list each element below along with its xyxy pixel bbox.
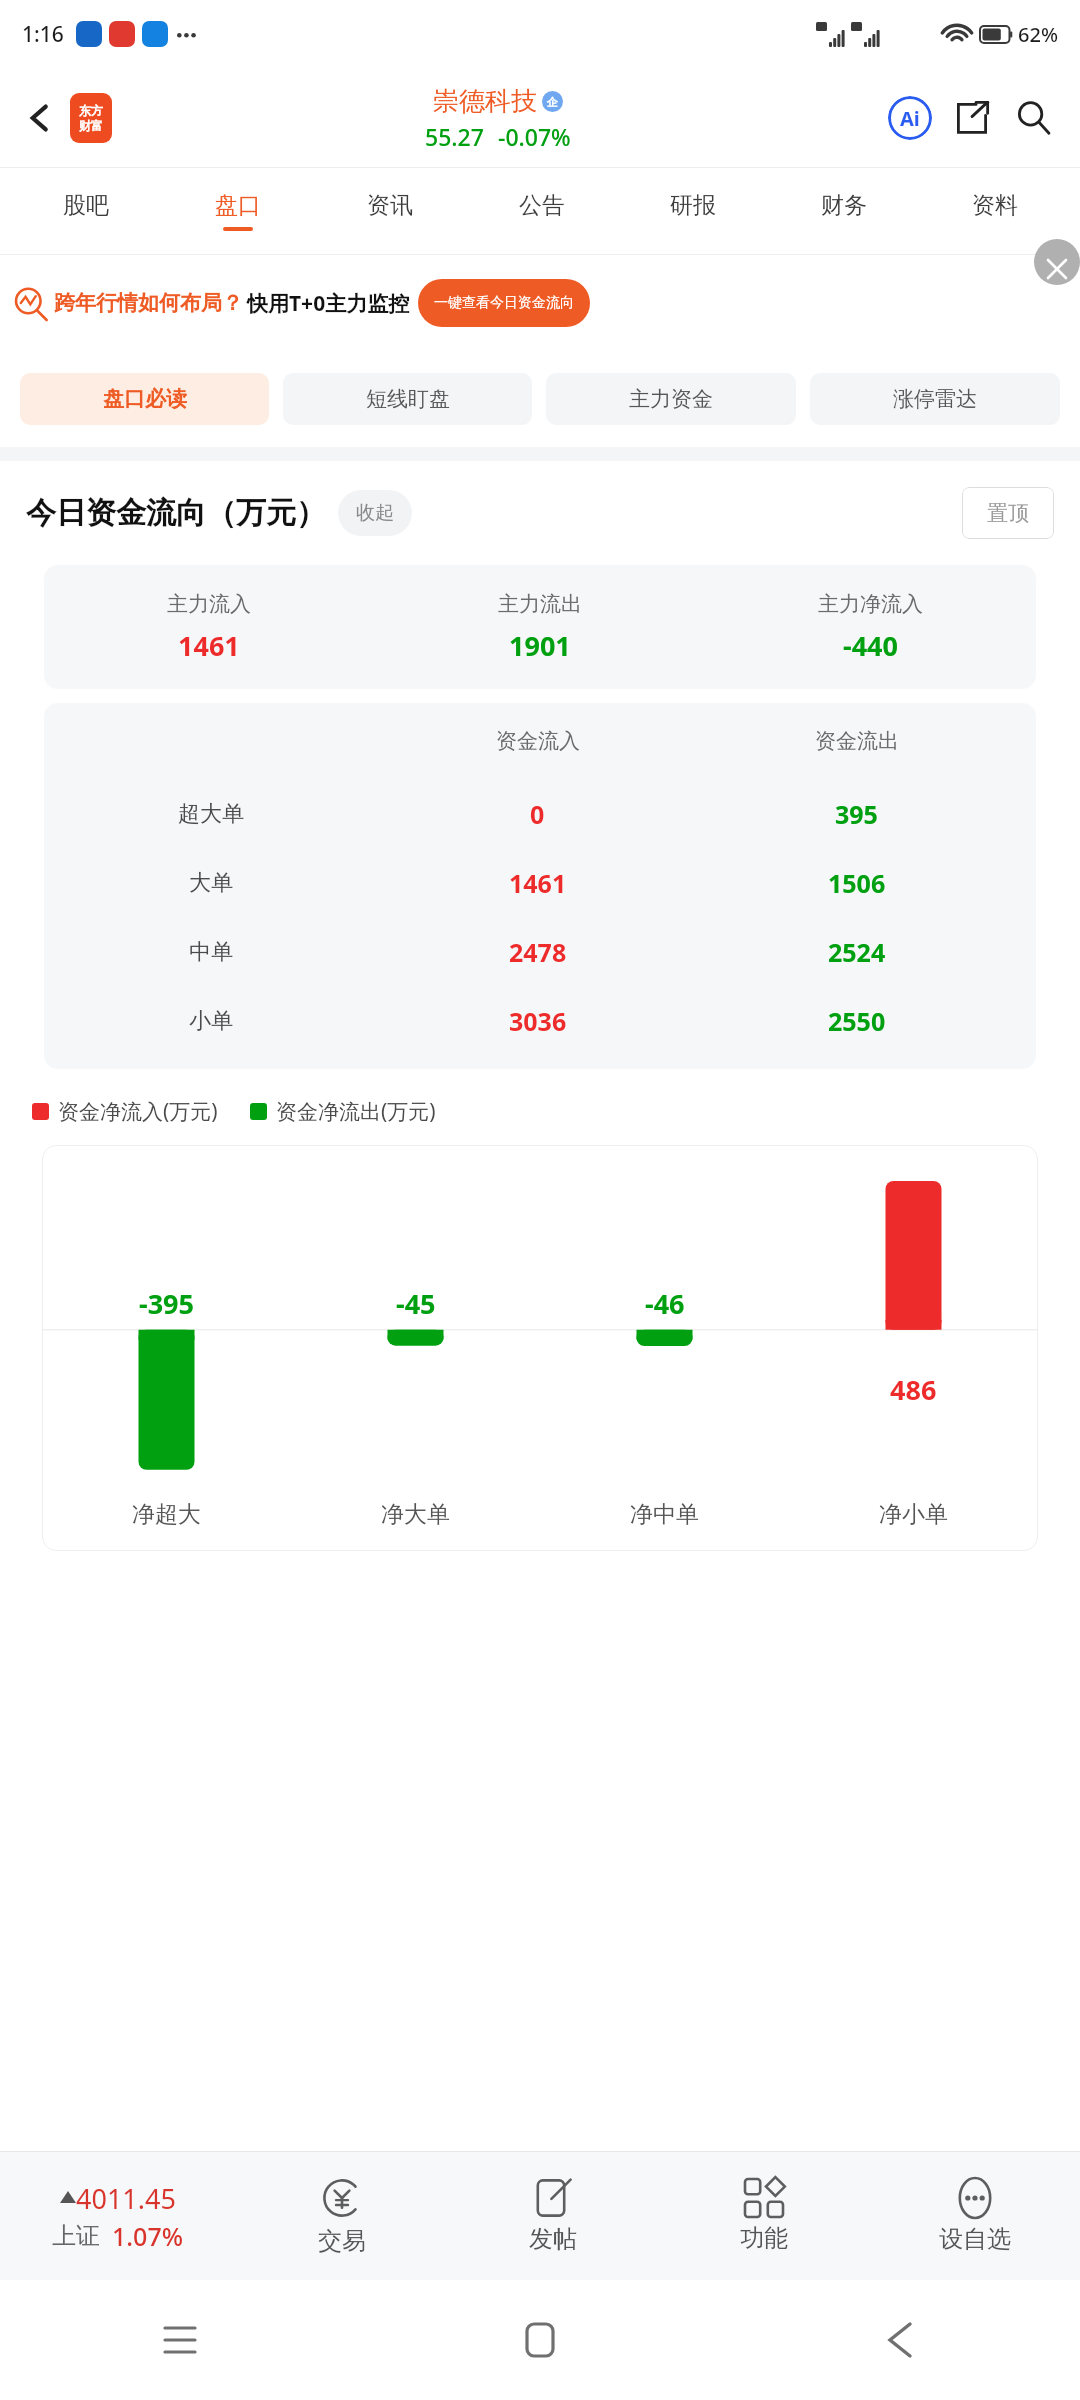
staticText: 跨年行情如何布局？ xyxy=(54,290,243,316)
staticText: 净小单 xyxy=(879,1500,948,1529)
staticText: 盘口 xyxy=(215,191,261,220)
staticText: 1461 xyxy=(178,627,240,664)
staticText: 395 xyxy=(835,797,878,831)
staticText: 功能 xyxy=(740,2223,788,2253)
staticText: 1:16 xyxy=(22,20,64,49)
button[interactable]: 资金流入 xyxy=(44,703,1036,1069)
staticText: 企 xyxy=(547,95,558,109)
staticText: 资金净流入(万元) xyxy=(58,1097,218,1126)
staticText: -46 xyxy=(645,1285,685,1322)
button[interactable]: 功能 xyxy=(658,2152,869,2280)
staticText: 超大单 xyxy=(178,800,244,828)
button[interactable]: 盘口必读 xyxy=(20,373,269,425)
staticText: 0 xyxy=(530,797,545,831)
button[interactable]: 设自选 xyxy=(869,2152,1080,2280)
staticText: 主力资金 xyxy=(629,386,713,412)
staticText: 2524 xyxy=(828,935,886,969)
button[interactable]: Close xyxy=(1034,239,1080,285)
staticText: 资金流出 xyxy=(815,728,899,754)
button[interactable]: 公告 xyxy=(466,168,617,254)
staticText: 资讯 xyxy=(367,191,413,220)
staticText: 崇德科技 xyxy=(433,85,537,118)
button[interactable]: 盘口 xyxy=(162,168,314,254)
staticText: -440 xyxy=(843,627,898,664)
staticText: 2478 xyxy=(509,935,567,969)
staticText: 一键查看今日资金流向 xyxy=(434,294,574,312)
button[interactable]: 主力流入 xyxy=(44,565,1036,689)
staticText: 东方 xyxy=(79,103,103,118)
staticText: 财务 xyxy=(821,191,867,220)
staticText: Ai xyxy=(900,105,920,132)
staticText: -45 xyxy=(396,1285,436,1322)
staticText: 净超大 xyxy=(132,1500,201,1529)
button[interactable]: East Money xyxy=(70,93,112,143)
button[interactable]: 4011.45 xyxy=(0,2152,236,2280)
staticText: 4011.45 xyxy=(76,2180,176,2217)
staticText: 1506 xyxy=(828,866,886,900)
staticText: 1461 xyxy=(509,866,567,900)
staticText: 今日资金流向（万元） xyxy=(26,494,326,532)
staticText: 1901 xyxy=(509,627,571,664)
staticText: 资料 xyxy=(972,191,1018,220)
button[interactable]: 资料 xyxy=(919,168,1070,254)
staticText: 研报 xyxy=(670,191,716,220)
staticText: 3036 xyxy=(509,1004,567,1038)
staticText: 交易 xyxy=(318,2226,366,2256)
staticText: 股吧 xyxy=(63,191,109,220)
staticText: -0.07% xyxy=(498,121,571,152)
button[interactable]: 研报 xyxy=(617,168,768,254)
staticText: 涨停雷达 xyxy=(893,386,977,412)
staticText: 小单 xyxy=(189,1007,233,1035)
staticText: 中单 xyxy=(189,938,233,966)
button[interactable]: 置顶 xyxy=(962,487,1054,539)
button[interactable]: -395 xyxy=(42,1145,1038,1551)
staticText: 净中单 xyxy=(630,1500,699,1529)
button[interactable]: 短线盯盘 xyxy=(283,373,532,425)
button[interactable]: 交易 xyxy=(236,2152,447,2280)
staticText: 设自选 xyxy=(939,2224,1011,2254)
staticText: 资金净流出(万元) xyxy=(276,1097,436,1126)
staticText: 1.07% xyxy=(112,2219,184,2253)
staticText: 62% xyxy=(1018,21,1058,48)
staticText: 收起 xyxy=(356,501,394,525)
staticText: 资金流入 xyxy=(496,728,580,754)
staticText: 主力流入 xyxy=(167,591,251,617)
staticText: 55.27 xyxy=(425,121,484,152)
staticText: 2550 xyxy=(828,1004,886,1038)
staticText: 置顶 xyxy=(987,500,1029,526)
button[interactable]: 一键查看今日资金流向 xyxy=(434,279,574,327)
staticText: 公告 xyxy=(519,191,565,220)
button[interactable]: 财务 xyxy=(768,168,919,254)
staticText: 盘口必读 xyxy=(103,386,187,412)
button[interactable]: 主力资金 xyxy=(546,373,796,425)
staticText: 快用T+0主力监控 xyxy=(247,289,410,318)
staticText: 财富 xyxy=(79,118,103,133)
button[interactable]: AI xyxy=(884,92,936,144)
staticText: 大单 xyxy=(189,869,233,897)
staticText: 主力净流入 xyxy=(818,591,923,617)
button[interactable]: Search xyxy=(1008,92,1060,144)
staticText: 发帖 xyxy=(529,2224,577,2254)
button[interactable]: Share xyxy=(946,92,998,144)
staticText: -395 xyxy=(139,1285,194,1322)
staticText: 主力流出 xyxy=(498,591,582,617)
staticText: 486 xyxy=(890,1371,937,1408)
staticText: 短线盯盘 xyxy=(366,386,450,412)
staticText: 净大单 xyxy=(381,1500,450,1529)
button[interactable]: Back xyxy=(14,92,66,144)
button[interactable]: 资讯 xyxy=(314,168,466,254)
staticText: 上证 xyxy=(52,2221,100,2251)
button[interactable]: 收起 xyxy=(356,490,394,536)
button[interactable]: 涨停雷达 xyxy=(810,373,1060,425)
button[interactable]: 股吧 xyxy=(10,168,162,254)
button[interactable]: 发帖 xyxy=(447,2152,658,2280)
